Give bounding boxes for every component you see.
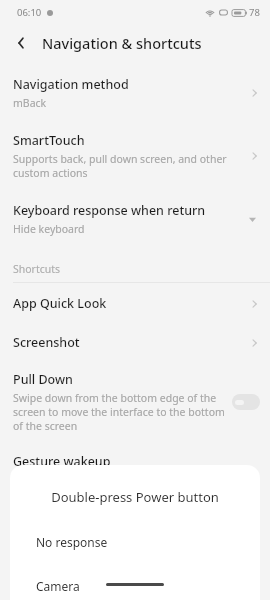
staticText: Screenshot [13,334,80,351]
staticText: Shortcuts [13,262,61,276]
button[interactable]: Screenshot [0,324,270,362]
button[interactable]: Back [8,30,34,56]
button[interactable]: Camera [10,572,260,600]
staticText: 06:10 [17,6,42,19]
staticText: Double-press Power button [10,488,260,506]
staticText: Swipe down from the bottom edge of the s… [13,391,226,433]
staticText: No response [36,534,108,550]
staticText: Camera [36,578,80,594]
staticText: Hide keyboard [13,222,85,236]
staticText: mBack [13,96,47,110]
button[interactable]: App Quick Look [0,283,270,324]
staticText: SmartTouch [13,132,85,149]
staticText: 78 [249,6,260,19]
button[interactable]: Expand [244,211,260,227]
staticText: Supports back, pull down screen, and oth… [13,152,242,180]
staticText: Navigation method [13,76,129,93]
button[interactable]: Navigation method [0,66,270,122]
button[interactable]: Pull Down [0,362,270,445]
button[interactable]: Pull Down toggle [232,394,260,410]
staticText: Keyboard response when return [13,202,206,219]
button[interactable]: Gesture wakeup [0,445,270,480]
staticText: Navigation & shortcuts [42,33,202,53]
staticText: Gesture wakeup [13,453,111,470]
button[interactable]: No response [10,528,260,556]
button[interactable]: Keyboard response when return [0,192,270,248]
staticText: Pull Down [13,371,73,388]
staticText: App Quick Look [13,295,107,312]
button[interactable]: SmartTouch [0,122,270,192]
